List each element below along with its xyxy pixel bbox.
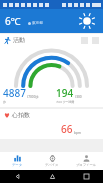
- button[interactable]: Recent apps: [69, 170, 103, 183]
- button[interactable]: Back: [0, 170, 35, 183]
- staticText: 東京都: [32, 21, 43, 26]
- staticText: 心拍数: [12, 111, 30, 119]
- button[interactable]: データ: [0, 152, 35, 170]
- staticText: 6℃: [5, 14, 21, 28]
- staticText: データ: [12, 163, 23, 167]
- staticText: 66: [61, 122, 73, 136]
- staticText: 歩: [3, 100, 6, 104]
- staticText: /300: [75, 95, 82, 99]
- button[interactable]: 活動: [0, 34, 103, 107]
- button[interactable]: 6℃: [0, 9, 103, 33]
- button[interactable]: Home: [35, 170, 69, 183]
- staticText: bpm: [74, 131, 81, 135]
- staticText: デバイス: [45, 163, 59, 167]
- staticText: 194: [56, 86, 74, 100]
- staticText: プロフィール: [76, 163, 97, 167]
- staticText: 4887: [3, 86, 26, 100]
- staticText: カロリー消費: [56, 100, 75, 104]
- staticText: /7000歩: [27, 95, 39, 99]
- button[interactable]: デバイス: [35, 152, 69, 170]
- staticText: 活動: [13, 36, 25, 44]
- button[interactable]: プロフィール: [69, 152, 103, 170]
- button[interactable]: 心拍数: [0, 109, 103, 139]
